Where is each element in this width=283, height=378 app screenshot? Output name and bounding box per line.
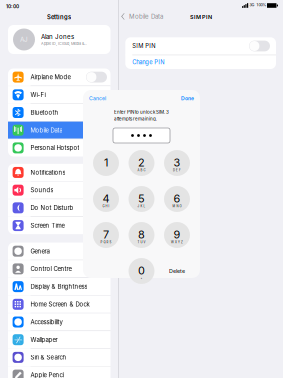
staticText: Cancel — [89, 95, 106, 101]
staticText: Done — [181, 95, 194, 101]
staticText: P Q R S — [100, 240, 111, 244]
button[interactable]: 6 — [164, 186, 190, 212]
button[interactable]: Done — [177, 90, 200, 107]
staticText: Wallpaper — [30, 336, 57, 343]
staticText: W X Y Z — [171, 240, 183, 244]
staticText: 6 — [173, 192, 180, 205]
staticText: Display & Brightness — [30, 283, 87, 290]
button[interactable]: Sounds — [8, 181, 110, 199]
staticText: 0 — [138, 264, 145, 277]
staticText: 4 — [102, 192, 109, 205]
button[interactable]: Siri & Search — [8, 349, 110, 366]
staticText: 7 — [103, 228, 109, 241]
staticText: A B C — [137, 168, 145, 172]
staticText: G H I — [102, 204, 109, 208]
staticText: 9 — [173, 228, 180, 241]
staticText: Mobile Data — [129, 13, 163, 20]
staticText: 3G 100% — [249, 3, 266, 7]
button[interactable]: Delete — [164, 258, 190, 284]
button[interactable]: 9 — [164, 222, 190, 248]
button[interactable]: General — [8, 243, 110, 260]
button[interactable]: Home Screen & Dock — [8, 296, 110, 313]
staticText: Siri & Search — [30, 354, 66, 361]
button[interactable]: Mobile Data — [8, 122, 110, 139]
button[interactable]: 2 — [128, 150, 154, 176]
button[interactable]: 1 — [93, 150, 119, 176]
staticText: Mobile Data — [30, 127, 62, 134]
staticText: + — [140, 276, 142, 280]
staticText: Enter PIN to unlock SIM. 3 attempts rema… — [114, 109, 169, 122]
button[interactable]: Screen Time — [8, 217, 110, 234]
button[interactable]: Notifications — [8, 164, 110, 181]
staticText: Apple ID, iCloud, Media &… — [41, 41, 87, 46]
staticText: 1 — [104, 156, 108, 169]
button[interactable]: 7 — [93, 222, 119, 248]
staticText: Do Not Disturb — [30, 204, 73, 211]
button[interactable]: 4 — [93, 186, 119, 212]
staticText: AJ — [20, 36, 28, 43]
button[interactable]: Wallpaper — [8, 331, 110, 348]
staticText: M N O — [172, 204, 181, 208]
staticText: 8 — [138, 228, 145, 241]
button[interactable]: Mobile Data — [120, 11, 170, 22]
staticText: J K L — [137, 204, 145, 208]
staticText: Screen Time — [30, 222, 64, 229]
button[interactable]: Wi-Fi — [8, 86, 110, 103]
staticText: Notifications — [30, 169, 65, 176]
button[interactable]: Do Not Disturb — [8, 199, 110, 216]
staticText: General — [30, 248, 50, 255]
staticText: Wi-Fi — [30, 91, 45, 98]
staticText: SIM PIN — [190, 14, 212, 20]
staticText: Bluetooth — [30, 109, 58, 116]
staticText: Change PIN — [132, 59, 164, 65]
staticText: 2 — [138, 156, 145, 169]
button[interactable]: Display & Brightness — [8, 278, 110, 295]
staticText: 5 — [138, 192, 145, 205]
button[interactable]: AJ — [8, 25, 110, 54]
staticText: Accessibility — [30, 318, 62, 326]
staticText: Control Centre — [30, 265, 71, 273]
button[interactable]: 8 — [128, 222, 154, 248]
button[interactable]: 0 — [128, 258, 154, 284]
staticText: Delete — [169, 268, 185, 274]
staticText: 3 — [173, 156, 180, 169]
staticText: Settings — [47, 13, 71, 21]
button[interactable]: Bluetooth — [8, 104, 110, 121]
button[interactable]: Airplane Mode — [8, 68, 110, 86]
staticText: Sounds — [30, 186, 53, 194]
staticText: D E F — [173, 168, 181, 172]
button[interactable]: Control Centre — [8, 260, 110, 277]
button[interactable]: Accessibility — [8, 313, 110, 331]
staticText: Airplane Mode — [30, 73, 70, 81]
button[interactable]: SIM PIN — [125, 37, 276, 55]
button[interactable]: Change PIN — [125, 55, 276, 69]
button[interactable]: 5 — [128, 186, 154, 212]
staticText: Alan Jones — [41, 33, 74, 40]
button[interactable]: 3 — [164, 150, 190, 176]
staticText: SIM PIN — [132, 42, 155, 49]
staticText: Personal Hotspot — [30, 144, 79, 152]
button[interactable]: Apple Pencil — [8, 366, 110, 378]
staticText: T U V — [137, 240, 145, 244]
staticText: Home Screen & Dock — [30, 301, 89, 308]
button[interactable]: Cancel — [83, 90, 110, 107]
staticText: Apple Pencil — [30, 371, 64, 378]
staticText: 10:00 — [6, 4, 19, 9]
button[interactable]: Personal Hotspot — [8, 139, 110, 156]
